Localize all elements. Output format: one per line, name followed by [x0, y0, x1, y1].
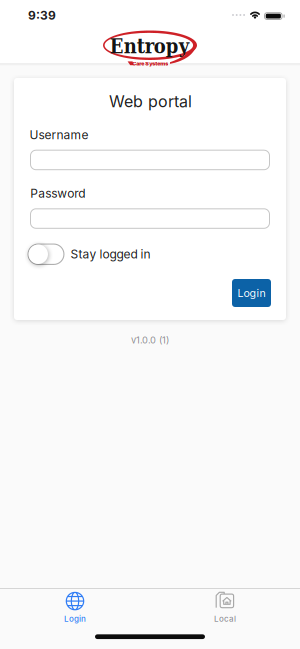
staticText: Stay logged in — [70, 247, 150, 261]
button[interactable]: Login — [0, 583, 150, 631]
staticText: v1.0.0 (1) — [131, 334, 169, 345]
button[interactable]: Stay logged in — [27, 243, 150, 265]
staticText: 9:39 — [28, 8, 56, 23]
staticText: Username — [29, 128, 88, 142]
staticText: Entropy — [110, 34, 189, 58]
staticText: Local — [214, 614, 236, 623]
button[interactable]: Local — [150, 583, 300, 631]
staticText: Care Systems — [132, 60, 168, 67]
staticText: Web portal — [109, 92, 192, 111]
button[interactable]: Login — [232, 279, 271, 307]
staticText: Login — [237, 287, 265, 299]
button[interactable]: Password — [30, 208, 270, 229]
staticText: Login — [64, 614, 86, 623]
staticText: Password — [30, 186, 85, 201]
button[interactable]: Username — [30, 150, 270, 170]
